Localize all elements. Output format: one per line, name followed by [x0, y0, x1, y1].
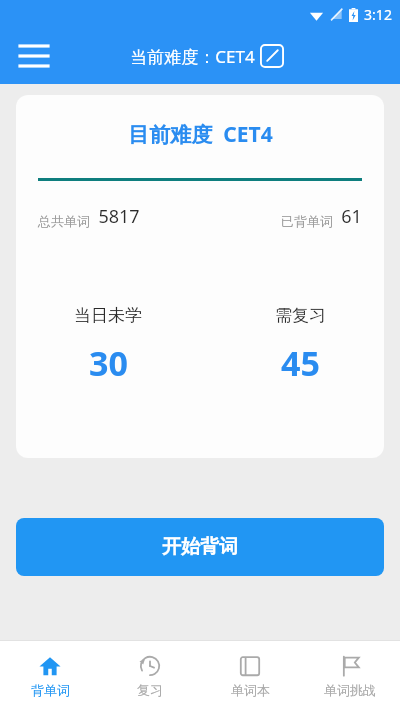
- staticText: 开始背词: [162, 535, 238, 559]
- button[interactable]: 单词挑战: [300, 641, 400, 711]
- button[interactable]: 当前难度：CET4: [130, 41, 287, 71]
- staticText: 复习: [137, 682, 163, 698]
- staticText: 单词本: [231, 682, 270, 698]
- staticText: 已背单词: [281, 213, 333, 229]
- button[interactable]: 背单词: [0, 641, 100, 711]
- button[interactable]: 单词本: [200, 641, 300, 711]
- other: Edit difficulty: [257, 41, 287, 71]
- staticText: 45: [281, 340, 320, 386]
- staticText: 当前难度：CET4: [130, 45, 255, 68]
- staticText: 3:12: [364, 5, 392, 24]
- button[interactable]: Menu: [12, 34, 56, 78]
- staticText: 需复习: [275, 305, 326, 326]
- staticText: 61: [341, 204, 362, 229]
- staticText: 总共单词: [38, 213, 90, 229]
- staticText: 背单词: [31, 682, 70, 698]
- staticText: 5817: [98, 204, 140, 229]
- staticText: 目前难度 CET4: [128, 120, 273, 149]
- button[interactable]: 开始背词: [16, 518, 384, 576]
- button[interactable]: 复习: [100, 641, 200, 711]
- staticText: 当日未学: [74, 305, 142, 326]
- staticText: 30: [89, 340, 128, 386]
- staticText: 单词挑战: [324, 682, 376, 698]
